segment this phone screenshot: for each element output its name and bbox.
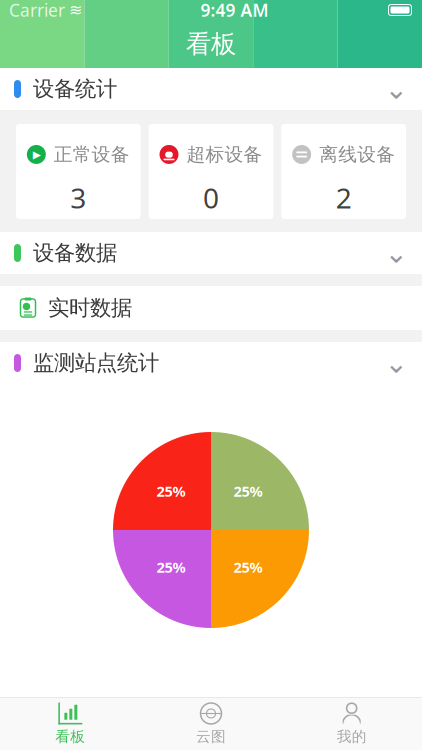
staticText: 9:49 AM <box>200 0 268 21</box>
staticText: ▶ <box>33 148 41 160</box>
staticText: 0 <box>203 179 219 216</box>
staticText: 25% <box>156 557 185 577</box>
button[interactable]: 超标设备 <box>149 124 273 219</box>
staticText: 看板 <box>55 727 85 745</box>
staticText: 正常设备 <box>54 143 130 166</box>
staticText: ⌄ <box>384 347 407 379</box>
staticText: 2 <box>336 179 352 216</box>
button[interactable]: 监测站点统计 <box>0 342 422 384</box>
staticText: 25% <box>233 481 262 501</box>
button[interactable]: 云图 <box>141 696 281 750</box>
staticText: 云图 <box>196 727 226 745</box>
button[interactable]: 我的 <box>281 696 422 750</box>
staticText: 超标设备 <box>186 143 262 166</box>
staticText: 看板 <box>186 28 236 59</box>
staticText: 25% <box>156 481 185 501</box>
staticText: Carrier <box>9 0 65 21</box>
staticText: ⌄ <box>384 73 407 105</box>
staticText: 3 <box>70 179 86 216</box>
staticText: 设备统计 <box>33 76 117 102</box>
staticText: 实时数据 <box>48 295 132 321</box>
staticText: 监测站点统计 <box>33 350 159 376</box>
staticText: 25% <box>233 557 262 577</box>
button[interactable]: ▶ <box>16 124 141 219</box>
button[interactable]: 设备统计 <box>0 68 422 110</box>
button[interactable]: 实时数据 <box>0 286 422 330</box>
button[interactable]: 设备数据 <box>0 232 422 274</box>
staticText: 离线设备 <box>319 143 395 166</box>
staticText: 我的 <box>337 727 367 745</box>
staticText: ≋ <box>69 1 82 19</box>
staticText: ⌄ <box>384 237 407 269</box>
button[interactable]: 看板 <box>0 696 141 750</box>
button[interactable]: 离线设备 <box>281 124 406 219</box>
staticText: 设备数据 <box>33 240 117 266</box>
